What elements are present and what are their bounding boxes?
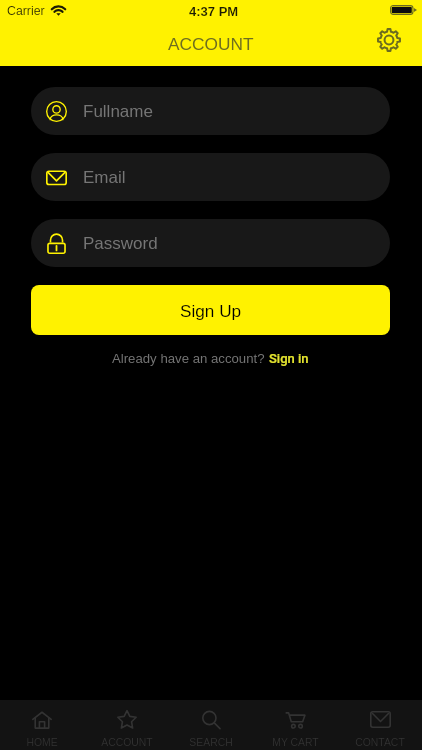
button[interactable]: Password — [31, 219, 390, 267]
button[interactable]: Email — [31, 153, 390, 201]
staticText: Fullname — [83, 102, 153, 121]
button[interactable]: Sign Up — [31, 285, 390, 335]
staticText: CONTACT — [355, 737, 405, 749]
button[interactable]: CONTACT — [338, 700, 422, 750]
button[interactable]: ACCOUNT — [85, 700, 169, 750]
staticText: Already have an account? — [112, 351, 269, 366]
button[interactable]: SEARCH — [169, 700, 253, 750]
button[interactable]: Already have an account? — [112, 351, 309, 366]
staticText: Email — [83, 168, 126, 187]
button[interactable]: MY CART — [253, 700, 337, 750]
staticText: SEARCH — [189, 737, 233, 749]
button[interactable]: Fullname — [31, 87, 390, 135]
staticText: ACCOUNT — [168, 34, 254, 53]
button[interactable]: HOME — [0, 700, 84, 750]
staticText: 4:37 PM — [189, 4, 239, 19]
button[interactable]: Settings — [373, 24, 405, 56]
staticText: HOME — [26, 737, 58, 749]
staticText: MY CART — [272, 737, 319, 749]
staticText: Sign in — [269, 351, 309, 366]
staticText: ACCOUNT — [101, 737, 153, 749]
staticText: Password — [83, 234, 158, 253]
staticText: Carrier — [7, 4, 45, 18]
staticText: Sign Up — [180, 301, 242, 320]
